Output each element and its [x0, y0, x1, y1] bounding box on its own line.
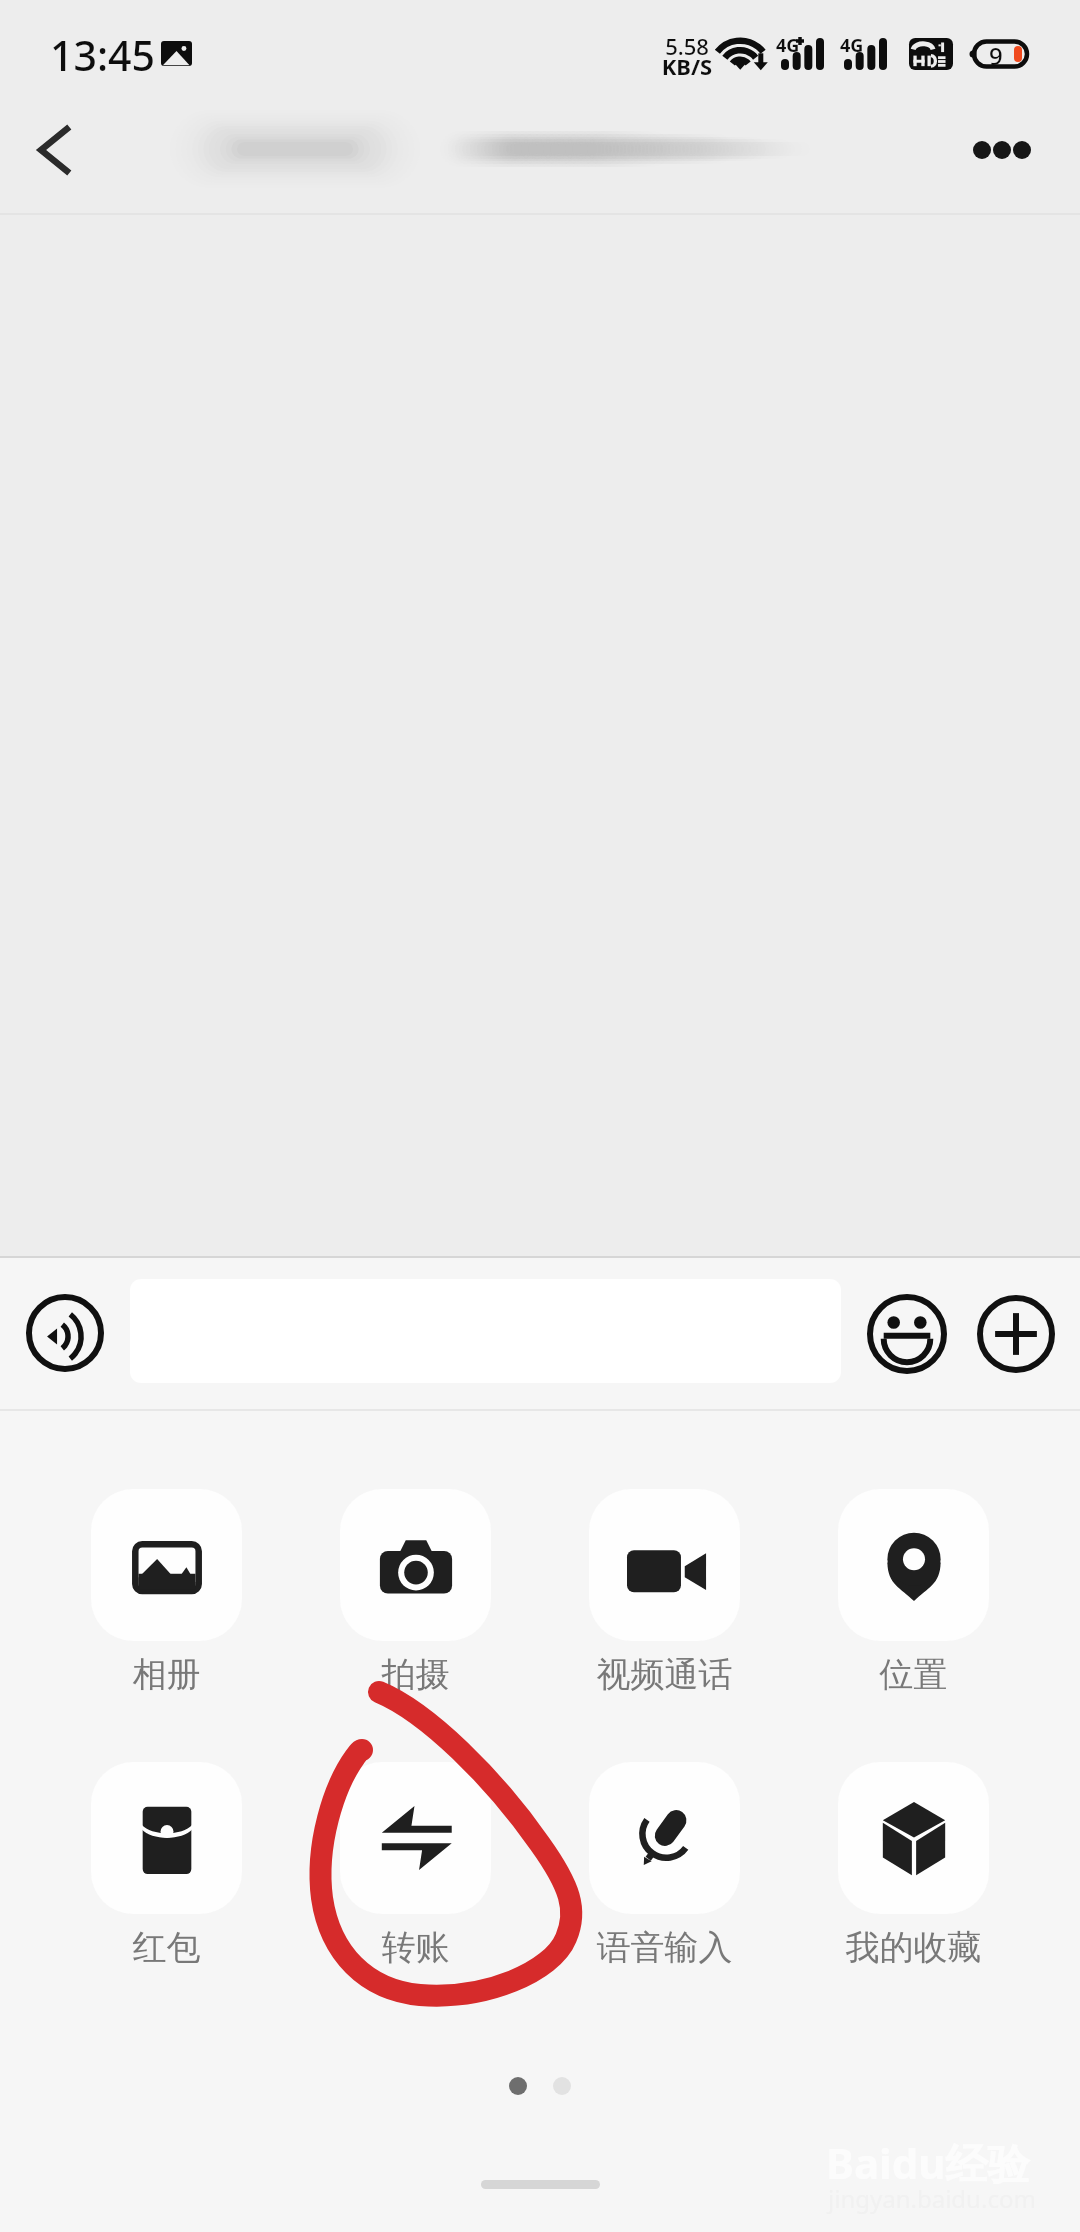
button[interactable]: More options	[952, 104, 1052, 196]
staticText: 视频通话	[589, 1653, 740, 1696]
staticText: 我的收藏	[838, 1926, 989, 1969]
button[interactable]: 视频通话	[589, 1489, 740, 1696]
button[interactable]: 红包	[91, 1762, 242, 1969]
staticText: 转账	[340, 1926, 491, 1969]
button[interactable]: Emoji	[861, 1288, 953, 1380]
button[interactable]: More functions	[970, 1288, 1062, 1380]
button[interactable]: 位置	[838, 1489, 989, 1696]
button[interactable]: 我的收藏	[838, 1762, 989, 1969]
button[interactable]: 相册	[91, 1489, 242, 1696]
staticText: 位置	[838, 1653, 989, 1696]
staticText: KB/S	[661, 51, 713, 81]
staticText: 4G	[776, 33, 800, 58]
button[interactable]: 语音输入	[589, 1762, 740, 1969]
staticText: 拍摄	[340, 1653, 491, 1696]
button[interactable]: 拍摄	[340, 1489, 491, 1696]
staticText: 13:45	[50, 27, 155, 83]
staticText: 相册	[91, 1653, 242, 1696]
staticText: 5.58	[663, 31, 711, 61]
staticText: 9	[989, 39, 1003, 67]
staticText: 红包	[91, 1926, 242, 1969]
staticText: 语音输入	[589, 1926, 740, 1969]
button[interactable]: Back	[10, 104, 96, 196]
button[interactable]: Voice input	[20, 1288, 110, 1378]
staticText: 4G	[840, 33, 864, 58]
button[interactable]: 转账	[340, 1762, 491, 1969]
